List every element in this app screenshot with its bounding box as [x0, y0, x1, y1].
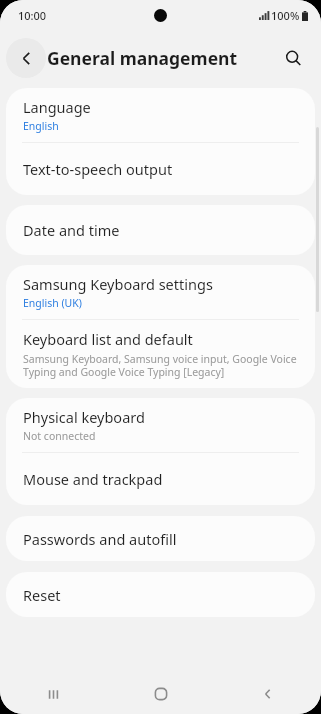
- staticText: Language: [23, 97, 91, 117]
- button[interactable]: Navigate up: [6, 38, 46, 78]
- staticText: Not connected: [23, 429, 96, 443]
- button[interactable]: Samsung Keyboard settings: [6, 265, 315, 319]
- staticText: English (UK): [23, 296, 82, 310]
- button[interactable]: Reset: [6, 572, 315, 617]
- button[interactable]: Recent apps: [0, 674, 107, 714]
- staticText: Samsung Keyboard settings: [23, 274, 213, 294]
- staticText: Mouse and trackpad: [23, 469, 163, 489]
- staticText: Reset: [23, 585, 61, 605]
- staticText: Date and time: [23, 220, 120, 240]
- button[interactable]: Passwords and autofill: [6, 516, 315, 561]
- button[interactable]: Date and time: [6, 205, 315, 255]
- button[interactable]: Physical keyboard: [6, 398, 315, 452]
- staticText: Text-to-speech output: [23, 159, 173, 179]
- button[interactable]: Language: [6, 88, 315, 142]
- staticText: General management: [47, 46, 238, 70]
- button[interactable]: Text-to-speech output: [6, 143, 315, 195]
- staticText: Samsung Keyboard, Samsung voice input, G…: [23, 352, 298, 379]
- staticText: English: [23, 119, 59, 133]
- button[interactable]: Keyboard list and default: [6, 320, 315, 388]
- staticText: 10:00: [18, 8, 47, 23]
- button[interactable]: Back: [214, 674, 321, 714]
- button[interactable]: Mouse and trackpad: [6, 453, 315, 505]
- staticText: Physical keyboard: [23, 407, 145, 427]
- staticText: Passwords and autofill: [23, 529, 177, 549]
- staticText: 100%: [271, 8, 300, 23]
- button[interactable]: Home: [107, 674, 214, 714]
- button[interactable]: Search: [273, 38, 313, 78]
- staticText: Keyboard list and default: [23, 329, 193, 349]
